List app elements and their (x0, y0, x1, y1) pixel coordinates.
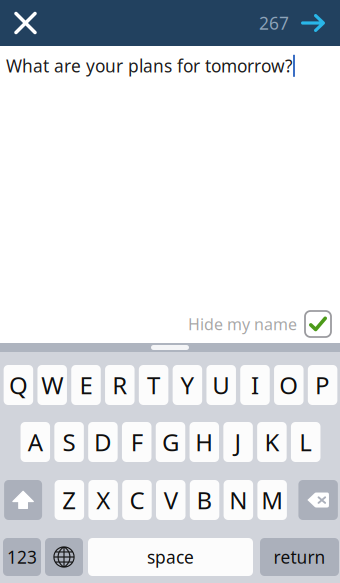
staticText: F (131, 426, 143, 458)
button[interactable]: Z (55, 480, 84, 520)
staticText: H (195, 426, 213, 458)
staticText: S (63, 426, 76, 458)
staticText: space (147, 545, 194, 569)
staticText: O (279, 369, 298, 401)
staticText: 267 (259, 11, 289, 35)
button[interactable]: L (291, 422, 320, 462)
staticText: What are your plans for tomorrow? (6, 54, 293, 78)
staticText: X (96, 484, 110, 516)
staticText: W (41, 369, 63, 401)
button[interactable]: M (257, 480, 287, 520)
staticText: Z (62, 484, 76, 516)
staticText: V (164, 484, 178, 516)
staticText: Q (9, 369, 28, 401)
button[interactable]: Y (173, 365, 202, 405)
button[interactable]: Q (4, 365, 33, 405)
staticText: K (264, 426, 279, 458)
button[interactable]: P (308, 365, 337, 405)
staticText: M (261, 484, 283, 516)
button[interactable]: 123 (3, 538, 41, 576)
button[interactable]: X (88, 480, 118, 520)
staticText: Y (180, 369, 194, 401)
button[interactable]: D (88, 422, 118, 462)
button[interactable]: K (257, 422, 287, 462)
button[interactable]: T (139, 365, 168, 405)
button[interactable]: Next keyboard (45, 538, 83, 576)
button[interactable]: A (21, 422, 50, 462)
button[interactable]: B (190, 480, 219, 520)
staticText: B (196, 484, 212, 516)
button[interactable]: Backspace (298, 480, 338, 520)
staticText: Hide my name (188, 313, 297, 335)
button[interactable]: J (223, 422, 253, 462)
button[interactable]: U (206, 365, 236, 405)
button[interactable]: Hide my name (305, 311, 331, 337)
staticText: N (229, 484, 247, 516)
staticText: 123 (7, 545, 37, 569)
button[interactable]: Send (294, 0, 332, 46)
staticText: U (212, 369, 230, 401)
staticText: C (129, 484, 144, 516)
button[interactable]: space (88, 538, 253, 576)
button[interactable]: E (71, 365, 101, 405)
staticText: A (28, 426, 43, 458)
staticText: T (147, 369, 160, 401)
button[interactable]: V (156, 480, 185, 520)
staticText: G (162, 426, 179, 458)
button[interactable]: G (156, 422, 185, 462)
staticText: R (112, 369, 127, 401)
button[interactable]: S (54, 422, 84, 462)
staticText: return (273, 545, 325, 569)
staticText: L (299, 426, 312, 458)
button[interactable]: C (122, 480, 152, 520)
staticText: D (94, 426, 112, 458)
button[interactable]: F (122, 422, 151, 462)
button[interactable]: H (190, 422, 219, 462)
button[interactable]: O (274, 365, 304, 405)
button[interactable]: Shift (4, 480, 42, 520)
staticText: J (235, 426, 242, 458)
button[interactable]: N (224, 480, 253, 520)
staticText: P (315, 369, 330, 401)
button[interactable]: Close (0, 0, 51, 46)
staticText: I (251, 369, 259, 401)
staticText: E (79, 369, 92, 401)
button[interactable]: return (260, 538, 339, 576)
button[interactable]: R (105, 365, 134, 405)
button[interactable]: I (240, 365, 270, 405)
button[interactable]: W (37, 365, 67, 405)
